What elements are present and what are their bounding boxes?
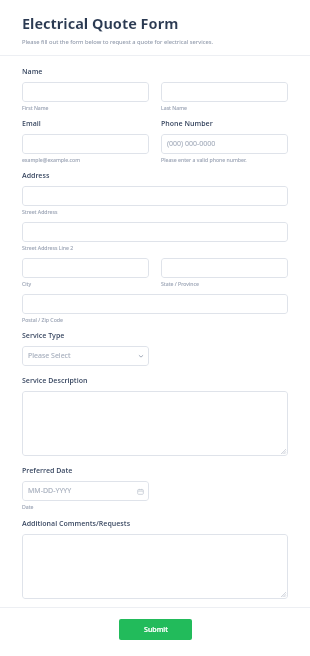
button[interactable]: Submit <box>119 619 192 640</box>
button[interactable]: MM-DD-YYYY <box>22 481 149 501</box>
staticText: Please Select <box>28 351 71 361</box>
staticText: Phone Number <box>161 119 213 129</box>
staticText: City <box>22 280 32 287</box>
staticText: Date <box>22 503 34 510</box>
staticText: (000) 000-0000 <box>167 139 216 149</box>
staticText: Please fill out the form below to reques… <box>22 38 214 46</box>
staticText: Last Name <box>161 104 187 111</box>
staticText: Additional Comments/Requests <box>22 519 131 529</box>
staticText: State / Province <box>161 280 199 287</box>
button[interactable] <box>22 258 149 278</box>
button[interactable]: Please Select <box>22 346 149 366</box>
staticText: example@example.com <box>22 156 81 163</box>
staticText: Submit <box>144 625 168 635</box>
button[interactable] <box>22 186 288 206</box>
staticText: Please enter a valid phone number. <box>161 156 247 163</box>
staticText: Preferred Date <box>22 466 73 476</box>
button[interactable] <box>22 534 288 599</box>
button[interactable]: (000) 000-0000 <box>161 134 288 154</box>
button[interactable] <box>22 294 288 314</box>
button[interactable] <box>22 134 149 154</box>
staticText: Street Address <box>22 208 58 215</box>
staticText: Service Description <box>22 376 88 386</box>
other: Open calendar <box>137 488 144 495</box>
staticText: Service Type <box>22 331 65 341</box>
button[interactable] <box>22 82 149 102</box>
staticText: First Name <box>22 104 49 111</box>
button[interactable] <box>161 82 288 102</box>
staticText: Postal / Zip Code <box>22 316 63 323</box>
staticText: Electrical Quote Form <box>22 13 179 33</box>
staticText: Street Address Line 2 <box>22 244 74 251</box>
button[interactable] <box>22 391 288 456</box>
button[interactable] <box>22 222 288 242</box>
staticText: MM-DD-YYYY <box>28 486 72 496</box>
staticText: Address <box>22 171 50 181</box>
staticText: Email <box>22 119 41 129</box>
button[interactable] <box>161 258 288 278</box>
staticText: Name <box>22 67 43 77</box>
